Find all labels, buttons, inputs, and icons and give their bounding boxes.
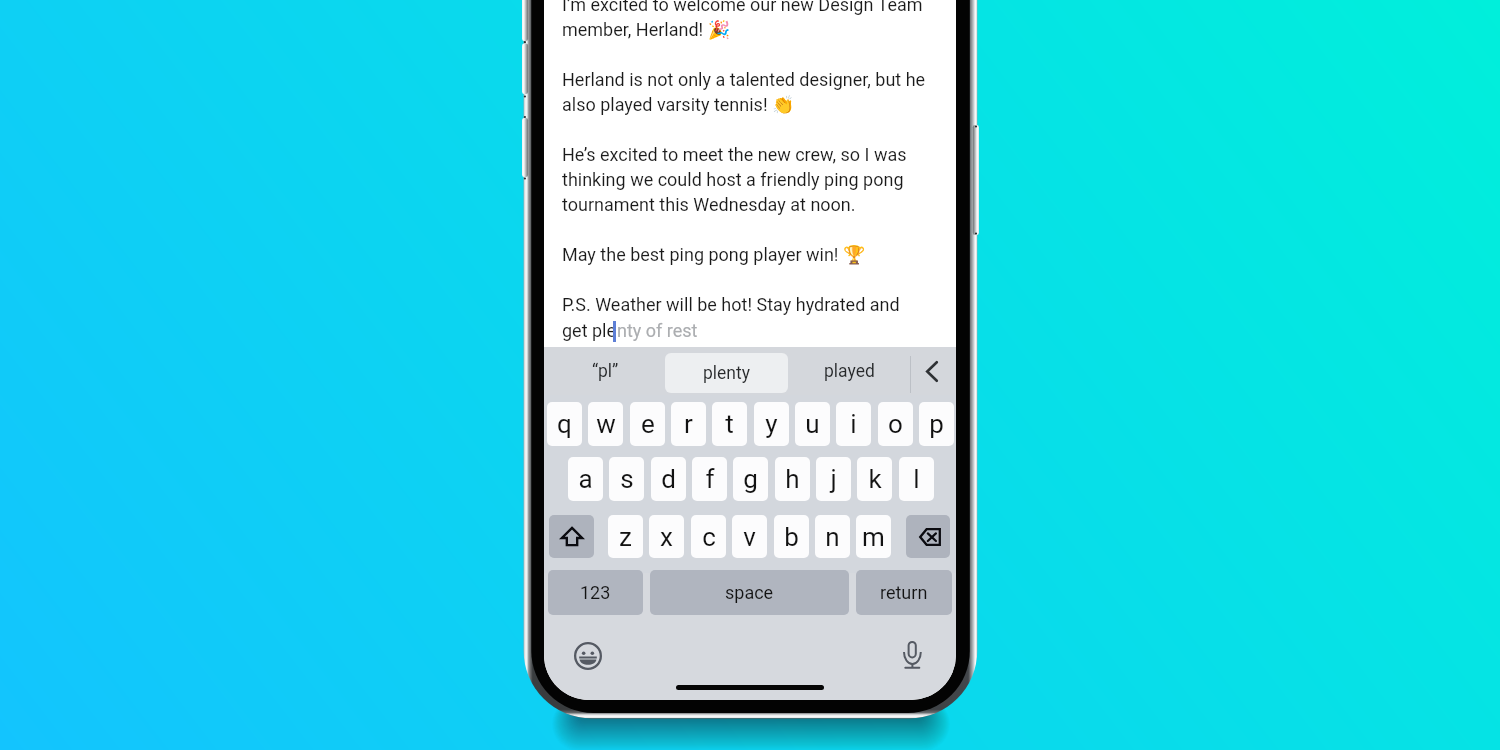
button[interactable]: Emoji keyboard [566, 634, 610, 678]
staticText: Herland is not only a talented designer,… [562, 69, 926, 90]
staticText: z [619, 522, 632, 552]
staticText: space [725, 582, 774, 603]
button[interactable]: k [857, 457, 892, 501]
staticText: member, Herland! 🎉 [562, 19, 731, 40]
staticText: s [620, 464, 634, 494]
button[interactable]: x [649, 515, 684, 558]
button[interactable]: space [650, 570, 849, 615]
staticText: h [785, 464, 800, 494]
button[interactable]: p [919, 402, 954, 446]
button[interactable]: Delete [906, 515, 950, 558]
staticText: P.S. Weather will be hot! Stay hydrated … [562, 294, 900, 315]
staticText: t [725, 409, 734, 439]
staticText: r [684, 409, 693, 439]
staticText: 123 [580, 582, 611, 603]
button[interactable]: a [568, 457, 603, 501]
staticText: y [765, 409, 778, 439]
button[interactable]: y [754, 402, 789, 446]
button[interactable]: Previous suggestions [913, 353, 949, 389]
staticText: x [660, 522, 673, 552]
staticText: l [913, 464, 920, 494]
button[interactable]: u [795, 402, 830, 446]
button[interactable]: b [774, 515, 809, 558]
button[interactable]: return [856, 570, 952, 615]
staticText: nty of rest [617, 320, 698, 341]
staticText: played [824, 361, 875, 382]
button[interactable]: s [609, 457, 644, 501]
staticText: c [702, 522, 716, 552]
button[interactable]: played [792, 348, 906, 394]
staticText: w [596, 409, 616, 439]
button[interactable]: c [691, 515, 726, 558]
staticText: v [743, 522, 756, 552]
staticText: d [661, 464, 676, 494]
staticText: u [805, 409, 820, 439]
button[interactable]: v [732, 515, 767, 558]
button[interactable]: n [815, 515, 850, 558]
staticText: plenty [703, 363, 751, 384]
staticText: get ple [562, 320, 617, 341]
button[interactable]: Shift [549, 515, 594, 558]
button[interactable]: t [712, 402, 747, 446]
staticText: a [578, 464, 593, 494]
button[interactable]: q [547, 402, 582, 446]
button[interactable]: r [671, 402, 706, 446]
button[interactable]: 123 [548, 570, 643, 615]
staticText: thinking we could host a friendly ping p… [562, 169, 904, 190]
staticText: May the best ping pong player win! 🏆 [562, 244, 866, 265]
staticText: q [557, 409, 572, 439]
staticText: m [862, 522, 885, 552]
staticText: He’s excited to meet the new crew, so I … [562, 144, 907, 165]
button[interactable]: d [651, 457, 686, 501]
button[interactable]: “pl” [548, 348, 662, 394]
staticText: o [888, 409, 903, 439]
staticText: “pl” [592, 361, 619, 382]
staticText: g [743, 464, 758, 494]
staticText: p [929, 409, 944, 439]
button[interactable]: i [836, 402, 871, 446]
staticText: i [850, 409, 857, 439]
staticText: b [784, 522, 799, 552]
staticText: k [868, 464, 882, 494]
staticText: n [825, 522, 840, 552]
button[interactable]: Dictation [890, 633, 934, 677]
button[interactable]: f [692, 457, 727, 501]
staticText: tournament this Wednesday at noon. [562, 194, 856, 215]
button[interactable]: g [733, 457, 768, 501]
staticText: e [641, 409, 655, 439]
button[interactable]: h [775, 457, 810, 501]
staticText: f [705, 464, 715, 494]
button[interactable]: plenty [665, 353, 788, 393]
button[interactable]: w [588, 402, 623, 446]
button[interactable]: l [899, 457, 934, 501]
button[interactable]: j [816, 457, 851, 501]
staticText: also played varsity tennis! 👏 [562, 94, 795, 115]
button[interactable]: z [608, 515, 643, 558]
button[interactable]: o [878, 402, 913, 446]
button[interactable]: m [856, 515, 891, 558]
button[interactable]: e [630, 402, 665, 446]
staticText: I’m excited to welcome our new Design Te… [562, 0, 923, 15]
staticText: return [880, 582, 928, 603]
staticText: j [830, 464, 837, 494]
